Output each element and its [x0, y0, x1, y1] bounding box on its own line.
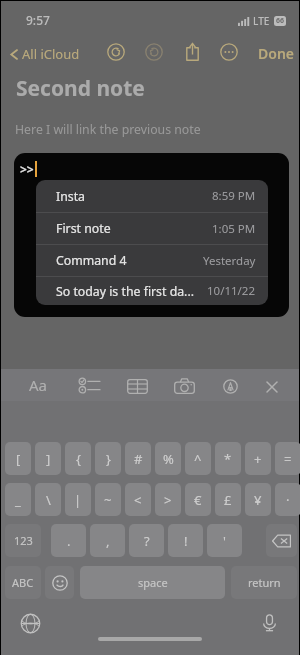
button[interactable]: , — [90, 524, 125, 557]
staticText: ! — [184, 532, 188, 550]
button[interactable]: space — [80, 566, 225, 599]
staticText: · — [286, 491, 290, 509]
staticText: [ — [16, 450, 21, 468]
button[interactable]: More options — [220, 43, 238, 61]
staticText: ^ — [194, 450, 202, 468]
button[interactable]: Change keyboard — [20, 613, 41, 634]
button[interactable]: ~ — [95, 483, 121, 516]
staticText: 9:57 — [26, 12, 50, 28]
button[interactable]: Checklist — [75, 374, 104, 397]
button[interactable]: [ — [5, 442, 31, 475]
staticText: 8:59 PM — [212, 188, 256, 204]
button[interactable]: So today is the first da... — [36, 277, 268, 305]
button[interactable]: 123 — [5, 524, 41, 557]
button[interactable]: \ — [35, 483, 61, 516]
staticText: ~ — [104, 491, 112, 509]
button[interactable]: } — [95, 442, 121, 475]
staticText: >> — [20, 161, 34, 177]
button[interactable]: = — [275, 442, 300, 475]
button[interactable]: > — [155, 483, 181, 516]
staticText: < — [134, 491, 142, 509]
staticText: All iCloud — [22, 45, 80, 63]
staticText: # — [134, 450, 143, 468]
staticText: € — [194, 491, 202, 509]
button[interactable]: · — [275, 483, 300, 516]
staticText: space — [138, 575, 168, 590]
staticText: ' — [223, 532, 226, 550]
button[interactable]: * — [215, 442, 241, 475]
button[interactable]: ] — [35, 442, 61, 475]
staticText: , — [106, 532, 110, 550]
button[interactable]: < — [125, 483, 151, 516]
button[interactable]: £ — [215, 483, 241, 516]
staticText: Aa — [29, 375, 48, 395]
staticText: 123 — [14, 533, 33, 548]
staticText: £ — [224, 491, 232, 509]
staticText: 1:05 PM — [212, 221, 256, 237]
button[interactable]: Markup — [219, 375, 242, 398]
button[interactable]: # — [125, 442, 151, 475]
staticText: 66 — [276, 16, 285, 26]
staticText: return — [248, 575, 281, 590]
button[interactable]: Backspace — [266, 524, 297, 557]
staticText: \ — [46, 491, 51, 509]
button[interactable]: Undo — [107, 43, 125, 61]
staticText: Command 4 — [56, 252, 127, 269]
staticText: > — [164, 491, 172, 509]
button[interactable]: € — [185, 483, 211, 516]
button[interactable]: ' — [207, 524, 242, 557]
button[interactable]: ^ — [185, 442, 211, 475]
staticText: Second note — [16, 74, 145, 103]
button[interactable]: Emoji — [45, 566, 74, 599]
button[interactable]: Camera — [170, 374, 199, 398]
staticText: + — [254, 450, 262, 468]
button[interactable]: Insta — [36, 180, 268, 212]
staticText: = — [284, 450, 292, 468]
staticText: | — [74, 491, 82, 509]
staticText: Insta — [56, 188, 85, 205]
staticText: { — [76, 450, 81, 468]
button[interactable]: . — [51, 524, 86, 557]
button[interactable]: + — [245, 442, 271, 475]
staticText: ABC — [12, 575, 34, 590]
button[interactable]: Done — [256, 44, 297, 63]
button[interactable]: % — [155, 442, 181, 475]
staticText: LTE — [253, 14, 270, 28]
button[interactable]: ! — [168, 524, 203, 557]
button[interactable]: First note — [36, 213, 268, 244]
button[interactable]: _ — [5, 483, 31, 516]
button[interactable]: Dictate — [259, 612, 280, 633]
button[interactable]: return — [231, 566, 297, 599]
staticText: } — [106, 450, 111, 468]
button[interactable]: ? — [129, 524, 164, 557]
staticText: ? — [144, 532, 150, 550]
button[interactable]: All iCloud — [8, 44, 82, 64]
staticText: Here I will link the previous note — [15, 121, 201, 138]
button[interactable]: | — [65, 483, 91, 516]
staticText: 10/11/22 — [207, 283, 256, 299]
button[interactable]: Aa — [27, 375, 50, 395]
button[interactable]: ABC — [5, 566, 41, 599]
staticText: ¥ — [254, 491, 262, 509]
button[interactable]: Share — [185, 42, 200, 61]
staticText: % — [163, 450, 174, 468]
staticText: First note — [56, 220, 111, 237]
button[interactable]: Command 4 — [36, 245, 268, 276]
staticText: Yesterday — [203, 253, 256, 269]
staticText: . — [67, 532, 71, 550]
button[interactable]: Close — [262, 377, 282, 397]
staticText: So today is the first da... — [56, 283, 194, 300]
button[interactable]: ¥ — [245, 483, 271, 516]
button[interactable]: Redo — [145, 43, 163, 61]
staticText: _ — [15, 491, 21, 509]
staticText: ] — [46, 450, 51, 468]
staticText: * — [224, 450, 232, 468]
button[interactable]: Table — [123, 375, 152, 398]
button[interactable]: { — [65, 442, 91, 475]
